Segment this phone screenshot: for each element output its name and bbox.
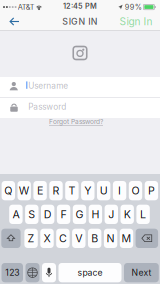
- staticText: 12:45 PM: [63, 2, 97, 10]
- staticText: V: [75, 232, 82, 245]
- button[interactable]: O: [129, 181, 142, 200]
- button[interactable]: A: [9, 205, 23, 224]
- staticText: SIGN IN: [62, 16, 98, 27]
- staticText: space: [77, 267, 102, 278]
- staticText: B: [91, 232, 98, 245]
- staticText: Q: [4, 184, 12, 197]
- button[interactable]: K: [120, 205, 134, 224]
- button[interactable]: Forgot Password?: [43, 116, 109, 126]
- staticText: L: [140, 208, 146, 221]
- button[interactable]: T: [65, 181, 79, 200]
- button[interactable]: 123: [1, 263, 23, 282]
- staticText: G: [75, 208, 83, 221]
- staticText: R: [52, 184, 59, 197]
- button[interactable]: Dictate: [42, 263, 56, 282]
- staticText: T: [68, 184, 75, 197]
- button[interactable]: L: [136, 205, 150, 224]
- staticText: X: [43, 232, 50, 245]
- button[interactable]: I: [113, 181, 126, 200]
- button[interactable]: U: [97, 181, 110, 200]
- button[interactable]: H: [89, 205, 102, 224]
- staticText: O: [131, 184, 139, 197]
- button[interactable]: Shift: [1, 229, 21, 248]
- staticText: P: [148, 184, 155, 197]
- button[interactable]: Z: [24, 229, 38, 248]
- staticText: 123: [5, 267, 19, 278]
- staticText: I: [118, 184, 121, 197]
- button[interactable]: J: [105, 205, 118, 224]
- button[interactable]: F: [57, 205, 70, 224]
- button[interactable]: Switch keyboard: [25, 263, 39, 282]
- button[interactable]: M: [120, 229, 133, 248]
- staticText: E: [37, 184, 43, 197]
- staticText: A: [12, 208, 19, 221]
- button[interactable]: S: [25, 205, 38, 224]
- button[interactable]: space: [58, 263, 121, 282]
- staticText: Sign In: [119, 15, 152, 28]
- staticText: Username: [28, 81, 68, 91]
- button[interactable]: V: [72, 229, 85, 248]
- staticText: AT&T: [18, 3, 35, 11]
- staticText: S: [28, 208, 35, 221]
- staticText: W: [19, 184, 30, 197]
- button[interactable]: Y: [81, 181, 94, 200]
- button[interactable]: C: [56, 229, 70, 248]
- staticText: D: [44, 208, 52, 221]
- button[interactable]: E: [33, 181, 47, 200]
- staticText: H: [91, 208, 99, 221]
- staticText: F: [61, 208, 67, 221]
- button[interactable]: B: [88, 229, 101, 248]
- button[interactable]: Q: [2, 181, 15, 200]
- staticText: 99%: [125, 3, 142, 11]
- staticText: Y: [84, 184, 91, 197]
- button[interactable]: P: [145, 181, 158, 200]
- button[interactable]: Next: [124, 263, 159, 282]
- staticText: Forgot Password?: [49, 117, 103, 125]
- button[interactable]: G: [73, 205, 86, 224]
- button[interactable]: X: [40, 229, 54, 248]
- button[interactable]: N: [104, 229, 117, 248]
- button[interactable]: R: [49, 181, 63, 200]
- staticText: K: [124, 208, 131, 221]
- staticText: J: [108, 208, 114, 221]
- button[interactable]: Back: [0, 12, 26, 31]
- button[interactable]: W: [17, 181, 31, 200]
- staticText: Password: [28, 102, 66, 112]
- staticText: U: [100, 184, 108, 197]
- staticText: Z: [28, 232, 35, 245]
- staticText: C: [59, 232, 67, 245]
- button[interactable]: D: [41, 205, 54, 224]
- staticText: M: [121, 232, 131, 245]
- staticText: Next: [131, 267, 151, 278]
- button[interactable]: Sign In: [116, 12, 152, 31]
- button[interactable]: Delete: [136, 229, 158, 248]
- staticText: N: [107, 232, 115, 245]
